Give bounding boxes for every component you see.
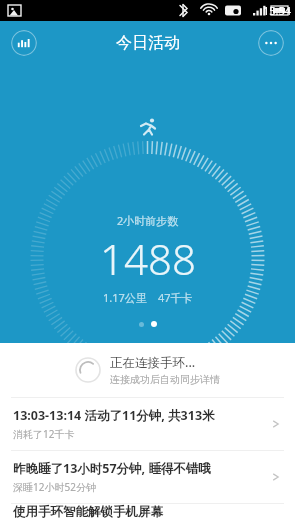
staticText: 2小时前步数 (117, 213, 179, 228)
staticText: 1.17公里 (103, 290, 147, 305)
staticText: 今日活动 (116, 33, 180, 53)
staticText: 13:03-13:14 活动了11分钟, 共313米 (13, 407, 215, 424)
button[interactable]: 正在连接手环... (0, 343, 295, 397)
button[interactable]: Statistics (11, 30, 37, 56)
button[interactable]: 使用手环智能解锁手机屏幕 (0, 504, 295, 524)
button[interactable]: 13:03-13:14 活动了11分钟, 共313米 (0, 398, 295, 450)
staticText: 47千卡 (158, 290, 193, 305)
staticText: 昨晚睡了13小时57分钟, 睡得不错哦 (13, 460, 211, 477)
staticText: 连接成功后自动同步详情 (110, 373, 220, 386)
staticText: 使用手环智能解锁手机屏幕 (13, 504, 163, 520)
staticText: 深睡12小时52分钟 (13, 480, 96, 494)
staticText: 1488 (100, 230, 196, 287)
button[interactable]: 昨晚睡了13小时57分钟, 睡得不错哦 (0, 451, 295, 503)
staticText: 正在连接手环... (110, 354, 196, 371)
button[interactable]: More options (258, 30, 284, 56)
staticText: 消耗了12千卡 (13, 427, 75, 441)
staticText: 15:54 (263, 3, 292, 18)
